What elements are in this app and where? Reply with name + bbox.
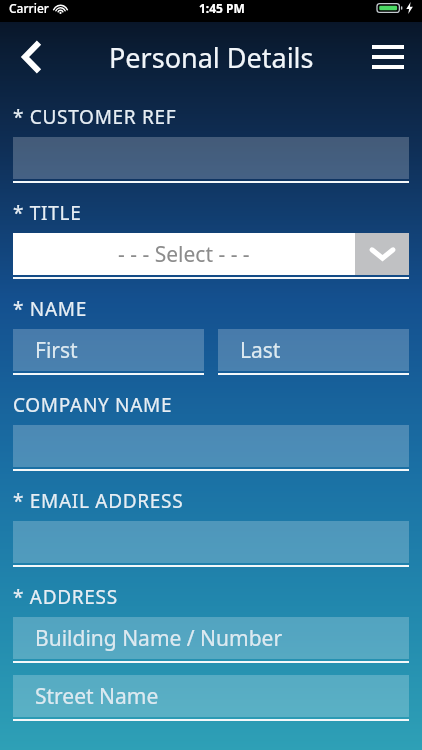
button[interactable]: First [13,329,204,375]
staticText: * EMAIL ADDRESS [13,488,184,514]
staticText: * NAME [13,296,87,322]
staticText: 1:45 PM [199,0,245,16]
button[interactable] [13,425,409,471]
staticText: Personal Details [109,39,314,76]
staticText: Building Name / Number [35,624,283,653]
button[interactable]: Last [218,329,409,375]
staticText: * TITLE [13,200,82,226]
button[interactable]: Street Name [13,675,409,721]
staticText: COMPANY NAME [13,392,173,418]
staticText: * CUSTOMER REF [13,104,177,130]
button[interactable] [13,137,409,183]
staticText: Carrier [9,0,49,16]
button[interactable]: Menu [360,29,416,85]
staticText: First [35,336,78,365]
button[interactable]: Select title [13,233,409,279]
staticText: Last [240,336,281,365]
button[interactable] [13,521,409,567]
button[interactable]: Back [6,31,58,83]
staticText: Street Name [35,682,159,711]
staticText: - - - Select - - - [118,240,250,269]
staticText: * ADDRESS [13,584,118,610]
button[interactable]: Building Name / Number [13,617,409,663]
